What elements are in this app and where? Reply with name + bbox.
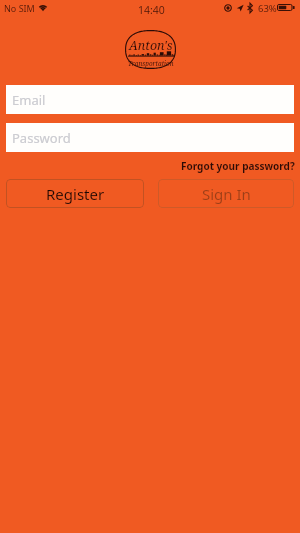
staticText: Forgot your password?: [181, 159, 295, 173]
staticText: 14:40: [138, 3, 165, 17]
staticText: 63%: [258, 2, 277, 15]
button[interactable]: Password: [6, 123, 294, 152]
staticText: Password: [12, 129, 71, 147]
button[interactable]: Forgot your password?: [181, 159, 295, 173]
button[interactable]: Register: [6, 179, 144, 208]
staticText: Register: [46, 184, 105, 204]
staticText: Email: [12, 91, 46, 109]
button[interactable]: Email: [6, 85, 294, 114]
button[interactable]: Sign In: [158, 179, 294, 208]
staticText: Anton's: [129, 37, 173, 54]
staticText: Sign In: [202, 184, 251, 204]
staticText: No SIM: [4, 2, 35, 14]
staticText: Transportation: [128, 59, 174, 67]
